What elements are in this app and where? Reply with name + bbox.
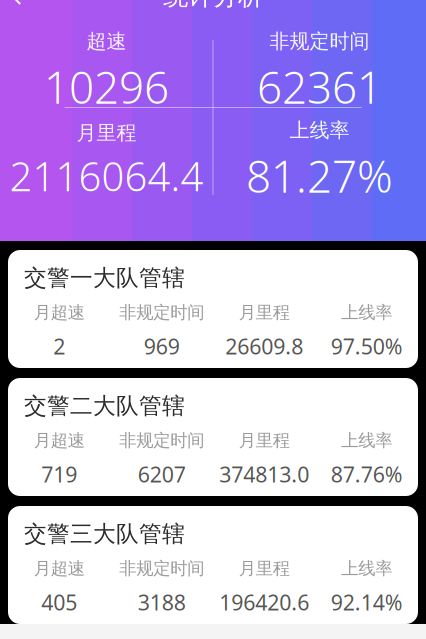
staticText: 非规定时间 — [269, 29, 369, 54]
button[interactable]: 交警一大队管辖 — [8, 250, 418, 368]
staticText: 97.50% — [331, 332, 403, 360]
staticText: 3188 — [138, 588, 186, 616]
staticText: 月超速 — [34, 558, 85, 579]
staticText: 92.14% — [331, 588, 403, 616]
staticText: 上线率 — [341, 430, 392, 451]
staticText: 月里程 — [239, 558, 290, 579]
staticText: 非规定时间 — [119, 430, 204, 451]
button[interactable]: 交警二大队管辖 — [8, 378, 418, 496]
staticText: 交警一大队管辖 — [24, 264, 185, 292]
staticText: ← — [10, 0, 41, 17]
staticText: 2 — [53, 332, 65, 360]
staticText: 非规定时间 — [119, 558, 204, 579]
staticText: 374813.0 — [219, 460, 309, 488]
staticText: 交警二大队管辖 — [24, 392, 185, 420]
staticText: 196420.6 — [219, 588, 309, 616]
staticText: 月超速 — [34, 302, 85, 323]
staticText: 上线率 — [341, 302, 392, 323]
staticText: 969 — [144, 332, 180, 360]
button[interactable]: Back — [0, 0, 52, 18]
staticText: 月里程 — [239, 302, 290, 323]
staticText: 交警三大队管辖 — [24, 520, 185, 548]
staticText: 26609.8 — [225, 332, 303, 360]
staticText: 405 — [41, 588, 77, 616]
staticText: 10296 — [44, 58, 169, 116]
staticText: 81.27% — [246, 147, 393, 205]
staticText: 719 — [41, 460, 77, 488]
button[interactable]: 交警三大队管辖 — [8, 506, 418, 624]
staticText: 上线率 — [289, 118, 349, 143]
staticText: 87.76% — [331, 460, 403, 488]
staticText: 上线率 — [341, 558, 392, 579]
staticText: 2116064.4 — [9, 149, 203, 202]
staticText: 月里程 — [239, 430, 290, 451]
staticText: 月超速 — [34, 430, 85, 451]
staticText: 62361 — [257, 58, 382, 116]
staticText: 非规定时间 — [119, 302, 204, 323]
staticText: 超速 — [86, 29, 126, 54]
staticText: 统计分析 — [163, 0, 263, 11]
staticText: 6207 — [138, 460, 186, 488]
staticText: 月里程 — [76, 121, 136, 145]
